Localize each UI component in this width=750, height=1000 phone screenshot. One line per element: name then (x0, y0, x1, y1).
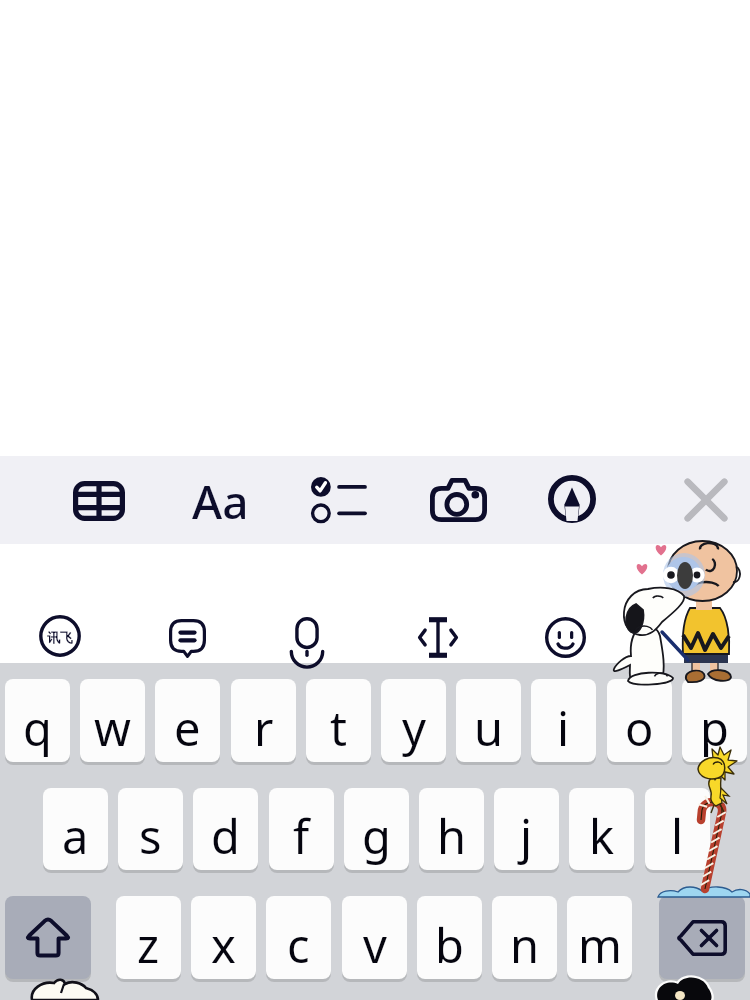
button[interactable]: Checklist (294, 458, 382, 542)
staticText: r (254, 696, 274, 760)
button[interactable]: i (531, 679, 596, 762)
button[interactable]: n (492, 896, 557, 979)
button[interactable]: o (607, 679, 672, 762)
button[interactable]: t (306, 679, 371, 762)
staticText: l (671, 804, 684, 868)
button[interactable]: k (569, 788, 634, 870)
button[interactable]: Close (662, 458, 750, 542)
button[interactable]: Table (55, 459, 143, 543)
staticText: i (557, 696, 570, 760)
button[interactable]: e (155, 679, 220, 762)
staticText: n (510, 913, 540, 977)
button[interactable]: b (417, 896, 482, 979)
button[interactable]: m (567, 896, 632, 979)
button[interactable]: h (419, 788, 484, 870)
button[interactable]: Switch input method (16, 594, 104, 678)
staticText: z (137, 913, 160, 977)
button[interactable]: g (344, 788, 409, 870)
button[interactable]: Camera (414, 458, 502, 542)
button[interactable]: Markup (528, 457, 616, 541)
staticText: x (211, 913, 236, 977)
staticText: g (362, 804, 391, 868)
button[interactable]: l (645, 788, 710, 870)
staticText: j (520, 804, 533, 868)
staticText: o (625, 696, 654, 760)
staticText: a (62, 804, 89, 868)
staticText: v (363, 913, 387, 977)
staticText: 讯飞 (47, 629, 73, 645)
button[interactable]: Font size (176, 459, 264, 543)
button[interactable]: a (43, 788, 108, 870)
button[interactable]: Shift (5, 896, 91, 979)
staticText: d (211, 804, 240, 868)
button[interactable]: d (193, 788, 258, 870)
staticText: u (474, 696, 504, 760)
staticText: p (700, 696, 729, 760)
button[interactable]: p (682, 679, 747, 762)
button[interactable]: Emoji (521, 595, 609, 679)
button[interactable]: v (342, 896, 407, 979)
staticText: q (23, 696, 52, 760)
staticText: y (402, 696, 426, 760)
button[interactable]: j (494, 788, 559, 870)
staticText: Aa (192, 470, 249, 532)
button[interactable]: u (456, 679, 521, 762)
button[interactable]: z (116, 896, 181, 979)
staticText: w (94, 696, 131, 760)
button[interactable]: Quick phrases (143, 596, 231, 680)
button[interactable]: q (5, 679, 70, 762)
staticText: m (578, 913, 622, 977)
staticText: f (293, 804, 310, 868)
button[interactable]: s (118, 788, 183, 870)
staticText: s (139, 804, 162, 868)
button[interactable]: x (191, 896, 256, 979)
staticText: k (589, 804, 615, 868)
staticText: b (435, 913, 464, 977)
button[interactable]: f (269, 788, 334, 870)
staticText: h (437, 804, 467, 868)
button[interactable]: w (80, 679, 145, 762)
button[interactable]: Backspace (659, 896, 745, 979)
button[interactable]: Voice input (263, 595, 351, 679)
button[interactable]: y (381, 679, 446, 762)
staticText: e (174, 696, 201, 760)
button[interactable]: Move cursor (394, 595, 482, 679)
staticText: c (287, 913, 310, 977)
staticText: t (330, 696, 347, 760)
button[interactable]: r (231, 679, 296, 762)
button[interactable]: c (266, 896, 331, 979)
